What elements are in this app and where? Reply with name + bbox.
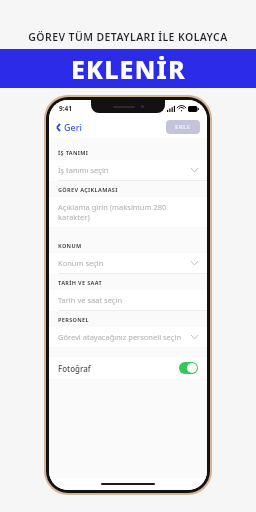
- staticText: İŞ TANIMI: [58, 149, 89, 156]
- staticText: Tarih ve saat seçin: [58, 295, 198, 305]
- button[interactable]: Geri: [49, 118, 88, 136]
- staticText: Geri: [64, 121, 82, 133]
- staticText: Görevi atayacağınız personeli seçin: [58, 332, 191, 342]
- button[interactable]: EKLE: [166, 120, 200, 134]
- button[interactable]: TARİH VE SAAT: [49, 274, 207, 310]
- staticText: PERSONEL: [58, 316, 89, 323]
- button[interactable]: KONUM: [49, 237, 207, 273]
- other: Fotoğraf açık: [179, 362, 198, 374]
- staticText: GÖREV TÜM DETAYLARI İLE KOLAYCA: [28, 30, 228, 44]
- staticText: Konum seçin: [58, 258, 191, 268]
- staticText: KONUM: [58, 242, 82, 249]
- button[interactable]: PERSONEL: [49, 311, 207, 347]
- staticText: EKLENİR: [71, 52, 186, 86]
- staticText: Fotoğraf: [58, 363, 179, 374]
- staticText: Açıklama girin (maksimum 280 karakter): [58, 202, 198, 222]
- staticText: 9:41: [59, 104, 72, 113]
- button[interactable]: İŞ TANIMI: [49, 144, 207, 180]
- button[interactable]: GÖREV AÇIKLAMASI: [49, 181, 207, 227]
- button[interactable]: Fotoğraf: [49, 357, 207, 379]
- staticText: TARİH VE SAAT: [58, 279, 103, 286]
- staticText: İş tanımı seçin: [58, 165, 191, 175]
- staticText: EKLE: [175, 123, 191, 131]
- staticText: GÖREV AÇIKLAMASI: [58, 186, 118, 193]
